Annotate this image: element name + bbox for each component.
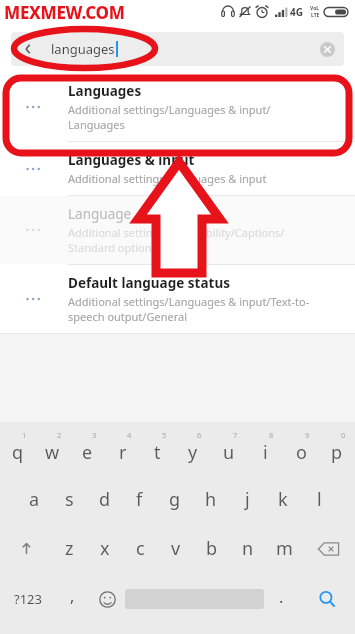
staticText: Languages: [68, 82, 142, 100]
staticText: e: [82, 440, 93, 465]
staticText: Language: [68, 205, 132, 223]
button[interactable]: x: [87, 524, 122, 573]
button[interactable]: d: [87, 475, 122, 524]
staticText: 4: [127, 430, 132, 440]
staticText: h: [205, 487, 217, 512]
button[interactable]: s: [52, 475, 87, 524]
staticText: 0: [341, 430, 346, 440]
staticText: 2: [57, 430, 62, 440]
staticText: Additional settings/Languages & input/: [68, 102, 271, 117]
button[interactable]: Search: [299, 573, 355, 625]
staticText: Standard option: [68, 240, 152, 255]
staticText: q: [12, 440, 24, 465]
button[interactable]: f: [122, 475, 157, 524]
button[interactable]: 9: [283, 426, 319, 475]
staticText: b: [206, 536, 218, 561]
staticText: z: [65, 536, 74, 561]
button[interactable]: h: [193, 475, 229, 524]
staticText: y: [188, 440, 198, 465]
button[interactable]: 4: [105, 426, 140, 475]
button[interactable]: Languages: [0, 73, 355, 141]
staticText: Default language status: [68, 274, 230, 292]
staticText: 1: [22, 430, 27, 440]
button[interactable]: Shift: [0, 524, 52, 573]
staticText: k: [278, 487, 288, 512]
button[interactable]: b: [194, 524, 230, 573]
staticText: MEXMEW.COM: [4, 1, 125, 24]
button[interactable]: 8: [247, 426, 283, 475]
staticText: v: [171, 536, 181, 561]
staticText: c: [136, 536, 145, 561]
button[interactable]: v: [158, 524, 194, 573]
button[interactable]: 2: [35, 426, 70, 475]
staticText: l: [317, 487, 322, 512]
button[interactable]: ?123: [0, 573, 55, 625]
staticText: 8: [269, 430, 274, 440]
staticText: u: [223, 440, 235, 465]
button[interactable]: m: [266, 524, 302, 573]
staticText: m: [276, 536, 293, 561]
staticText: x: [100, 536, 110, 561]
staticText: 5: [162, 430, 167, 440]
staticText: j: [245, 487, 250, 512]
staticText: f: [136, 487, 143, 512]
staticText: ,: [70, 585, 75, 607]
button[interactable]: Default language status: [0, 265, 355, 333]
button[interactable]: Backspace: [302, 524, 355, 573]
staticText: languages: [51, 40, 115, 58]
button[interactable]: l: [301, 475, 337, 524]
staticText: 4G: [290, 5, 303, 19]
button[interactable]: c: [122, 524, 158, 573]
staticText: 7: [233, 430, 238, 440]
staticText: s: [65, 487, 74, 512]
staticText: a: [29, 487, 40, 512]
button[interactable]: 1: [0, 426, 35, 475]
button[interactable]: k: [265, 475, 301, 524]
staticText: LTE: [311, 12, 320, 19]
button[interactable]: Languages & input: [0, 142, 355, 195]
staticText: g: [169, 487, 181, 512]
staticText: n: [242, 536, 254, 561]
staticText: Additional settings/Languages & input: [68, 171, 267, 186]
button[interactable]: a: [17, 475, 52, 524]
button[interactable]: .: [264, 573, 299, 625]
staticText: Additional settings/Accessibility/Captio…: [68, 225, 285, 240]
staticText: o: [296, 440, 307, 465]
staticText: r: [119, 440, 127, 465]
staticText: speech output/General: [68, 309, 187, 324]
staticText: t: [154, 440, 161, 465]
staticText: p: [331, 440, 343, 465]
staticText: i: [263, 440, 268, 465]
staticText: d: [99, 487, 111, 512]
button[interactable]: Emoji: [90, 573, 125, 625]
staticText: Additional settings/Languages & input/Te…: [68, 294, 310, 309]
staticText: 3: [92, 430, 97, 440]
button[interactable]: n: [230, 524, 266, 573]
button[interactable]: 7: [211, 426, 247, 475]
button[interactable]: j: [229, 475, 265, 524]
button[interactable]: Language: [0, 196, 355, 264]
staticText: 6: [197, 430, 202, 440]
staticText: Languages: [68, 117, 125, 132]
staticText: .: [279, 586, 284, 608]
button[interactable]: 5: [140, 426, 175, 475]
button[interactable]: Back: [11, 32, 45, 66]
staticText: 9: [305, 430, 310, 440]
button[interactable]: [125, 587, 264, 611]
button[interactable]: z: [52, 524, 87, 573]
staticText: Languages & input: [68, 151, 195, 169]
button[interactable]: ,: [55, 573, 90, 625]
button[interactable]: Clear: [310, 32, 344, 66]
button[interactable]: 3: [70, 426, 105, 475]
button[interactable]: g: [157, 475, 193, 524]
staticText: w: [45, 440, 60, 465]
button[interactable]: 6: [175, 426, 211, 475]
staticText: ?123: [14, 590, 42, 608]
staticText: VoL: [310, 5, 320, 12]
button[interactable]: 0: [319, 426, 355, 475]
